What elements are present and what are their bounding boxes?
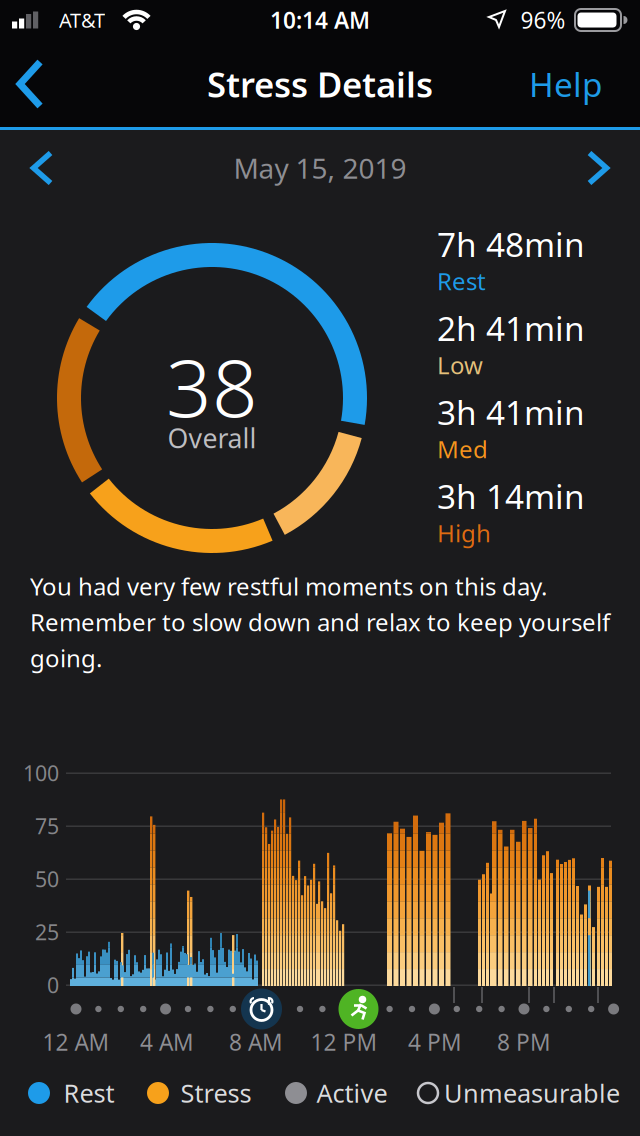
staticText: 3h 14min bbox=[437, 474, 585, 518]
staticText: Med bbox=[437, 433, 488, 465]
staticText: 50 bbox=[35, 865, 59, 893]
staticText: 12 AM bbox=[42, 1027, 109, 1057]
staticText: 25 bbox=[35, 918, 59, 946]
staticText: 4 PM bbox=[408, 1027, 462, 1057]
staticText: Stress Details bbox=[207, 61, 433, 107]
button[interactable]: Help bbox=[511, 40, 621, 128]
staticText: 7h 48min bbox=[437, 222, 585, 266]
staticText: Low bbox=[437, 349, 483, 381]
staticText: Rest bbox=[437, 265, 486, 297]
staticText: 100 bbox=[23, 759, 59, 787]
staticText: Help bbox=[529, 62, 603, 106]
staticText: Active bbox=[316, 1076, 387, 1110]
staticText: 8 AM bbox=[229, 1027, 283, 1057]
staticText: High bbox=[437, 517, 491, 549]
staticText: 8 PM bbox=[497, 1027, 551, 1057]
button[interactable] bbox=[14, 140, 70, 196]
staticText: 12 PM bbox=[310, 1027, 377, 1057]
staticText: AT&T bbox=[59, 7, 105, 33]
button[interactable] bbox=[0, 40, 60, 128]
staticText: 2h 41min bbox=[437, 306, 585, 350]
staticText: Overall bbox=[167, 420, 256, 456]
staticText: You had very few restful moments on this… bbox=[30, 570, 610, 674]
staticText: 4 AM bbox=[140, 1027, 194, 1057]
staticText: 10:14 AM bbox=[270, 5, 370, 35]
staticText: 0 bbox=[47, 971, 59, 999]
staticText: Rest bbox=[63, 1076, 114, 1110]
staticText: Unmeasurable bbox=[444, 1076, 620, 1110]
staticText: May 15, 2019 bbox=[233, 149, 406, 187]
button[interactable] bbox=[570, 140, 626, 196]
staticText: 3h 41min bbox=[437, 390, 585, 434]
staticText: 38 bbox=[166, 333, 258, 439]
staticText: 75 bbox=[35, 812, 59, 840]
staticText: Stress bbox=[180, 1076, 251, 1110]
staticText: 96% bbox=[520, 5, 565, 35]
